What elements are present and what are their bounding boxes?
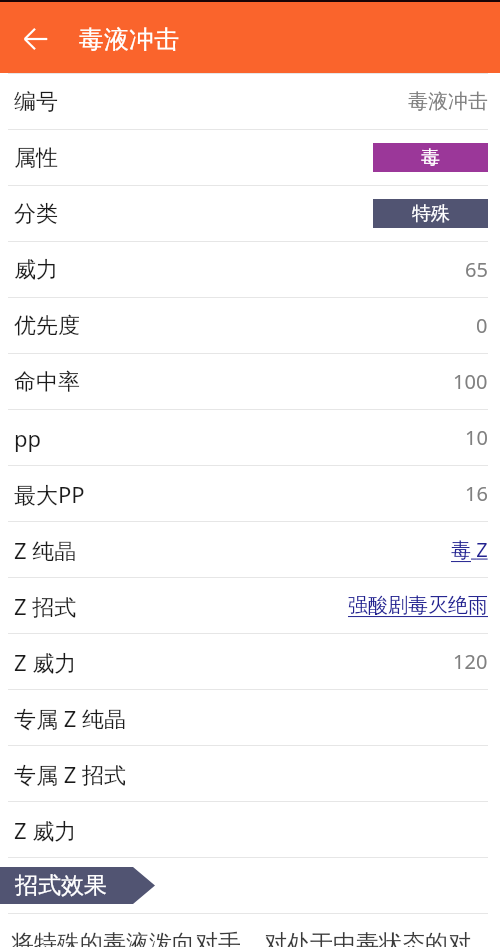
- button[interactable]: Z 威力: [0, 802, 500, 857]
- staticText: Z 招式: [14, 591, 77, 621]
- staticText: 属性: [14, 144, 58, 172]
- button[interactable]: pp: [0, 410, 500, 465]
- button[interactable]: 优先度: [0, 298, 500, 353]
- button[interactable]: 毒: [373, 143, 488, 172]
- staticText: 专属 Z 纯晶: [14, 703, 127, 733]
- staticText: Z 威力: [14, 647, 77, 677]
- staticText: 威力: [14, 256, 58, 284]
- button[interactable]: 分类: [0, 186, 500, 241]
- staticText: 毒液冲击: [79, 24, 179, 55]
- button[interactable]: Back: [12, 15, 60, 63]
- button[interactable]: Z 招式: [0, 578, 500, 633]
- staticText: 毒液冲击: [408, 89, 488, 114]
- staticText: 100: [453, 368, 488, 395]
- button[interactable]: 编号: [0, 74, 500, 129]
- staticText: 10: [465, 424, 488, 451]
- staticText: 将特殊的毒液泼向对手，对处于中毒状态的对: [11, 929, 471, 947]
- staticText: 特殊: [412, 202, 450, 226]
- staticText: 编号: [14, 88, 58, 116]
- staticText: 优先度: [14, 312, 80, 340]
- staticText: 最大PP: [14, 479, 85, 509]
- button[interactable]: 专属 Z 纯晶: [0, 690, 500, 745]
- button[interactable]: 最大PP: [0, 466, 500, 521]
- staticText: 毒 Z: [451, 536, 488, 563]
- staticText: 65: [465, 256, 488, 283]
- button[interactable]: 威力: [0, 242, 500, 297]
- staticText: pp: [14, 423, 42, 453]
- button[interactable]: 属性: [0, 130, 500, 185]
- button[interactable]: Z 纯晶: [0, 522, 500, 577]
- staticText: 强酸剧毒灭绝雨: [348, 593, 488, 618]
- staticText: 招式效果: [15, 871, 107, 900]
- staticText: 毒: [421, 146, 440, 170]
- staticText: Z 纯晶: [14, 535, 77, 565]
- button[interactable]: 命中率: [0, 354, 500, 409]
- button[interactable]: 特殊: [373, 199, 488, 228]
- staticText: 0: [476, 312, 488, 339]
- staticText: 专属 Z 招式: [14, 759, 127, 789]
- staticText: Z 威力: [14, 815, 77, 845]
- button[interactable]: Z 威力: [0, 634, 500, 689]
- staticText: 分类: [14, 200, 58, 228]
- staticText: 16: [465, 480, 488, 507]
- button[interactable]: 专属 Z 招式: [0, 746, 500, 801]
- staticText: 命中率: [14, 368, 80, 396]
- staticText: 120: [453, 648, 488, 675]
